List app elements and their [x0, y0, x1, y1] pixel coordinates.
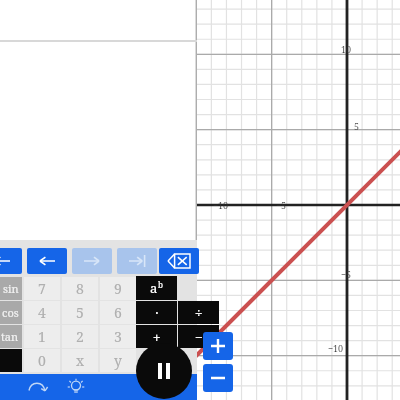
button[interactable]: Operator — [178, 301, 219, 324]
button[interactable]: 3 — [100, 325, 136, 348]
button[interactable]: Hint — [56, 375, 96, 399]
staticText: 6 — [114, 303, 122, 322]
button[interactable]: 9 — [100, 277, 136, 300]
button[interactable]: x — [62, 349, 98, 372]
staticText: sin — [3, 281, 19, 296]
button[interactable]: Zoom in — [203, 332, 233, 360]
button[interactable]: Undo — [18, 376, 58, 398]
button[interactable]: cos — [0, 301, 22, 324]
staticText: 9 — [114, 279, 122, 298]
button[interactable]: 5 — [62, 301, 98, 324]
staticText: tan — [1, 329, 19, 344]
staticText: cos — [2, 305, 19, 320]
button[interactable]: sin — [0, 277, 22, 300]
button[interactable]: 2 — [62, 325, 98, 348]
button[interactable]: Operator — [136, 325, 177, 348]
staticText: y — [114, 351, 122, 370]
staticText: a — [150, 279, 158, 297]
staticText: 0 — [38, 351, 46, 370]
button[interactable]: 4 — [24, 301, 60, 324]
button[interactable]: Backspace — [159, 248, 199, 274]
staticText: 5 — [76, 303, 84, 322]
button[interactable]: 7 — [24, 277, 60, 300]
button[interactable]: 6 — [100, 301, 136, 324]
staticText: x — [76, 351, 85, 370]
button[interactable]: Navigate — [27, 248, 67, 274]
button[interactable]: Navigate — [117, 248, 157, 274]
button[interactable]: 8 — [62, 277, 98, 300]
button[interactable]: Navigate — [72, 248, 112, 274]
button[interactable]: Pause — [136, 343, 192, 399]
staticText: −10 — [202, 199, 228, 211]
button[interactable]: Operator — [136, 301, 177, 324]
staticText: ÷ — [195, 304, 203, 322]
staticText: · — [155, 303, 159, 322]
staticText: + — [153, 328, 161, 346]
button[interactable]: tan — [0, 325, 22, 348]
staticText: 10 — [325, 43, 351, 55]
staticText: 1 — [38, 327, 46, 346]
button[interactable]: Zoom out — [203, 364, 233, 392]
button[interactable]: Operator — [136, 276, 177, 300]
button[interactable]: Navigate — [0, 248, 22, 274]
staticText: 8 — [76, 279, 84, 298]
button[interactable]: y — [100, 349, 136, 372]
staticText: 3 — [114, 327, 122, 346]
staticText: 2 — [76, 327, 84, 346]
staticText: b — [158, 279, 163, 290]
staticText: −10 — [317, 342, 343, 354]
staticText: − — [195, 328, 203, 346]
button[interactable]: 1 — [24, 325, 60, 348]
staticText: 7 — [38, 279, 46, 298]
button[interactable]: Operator — [178, 325, 219, 348]
staticText: 5 — [333, 120, 359, 132]
staticText: −5 — [325, 268, 351, 280]
button[interactable]: 0 — [24, 349, 60, 372]
staticText: −5 — [260, 199, 286, 211]
staticText: 4 — [38, 303, 46, 322]
